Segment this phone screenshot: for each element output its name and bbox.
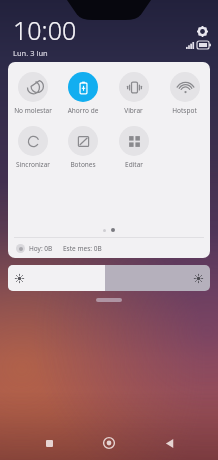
staticText: Lun, 3 Jun bbox=[13, 48, 48, 56]
button[interactable]: Hotspot bbox=[159, 72, 210, 115]
button[interactable]: Home bbox=[94, 428, 124, 458]
button[interactable]: Recents bbox=[34, 428, 64, 458]
button[interactable]: Editar bbox=[108, 126, 159, 169]
staticText: Este mes: 0B bbox=[63, 244, 102, 253]
button[interactable]: Ahorro de batería bbox=[58, 72, 108, 115]
button[interactable]: Back bbox=[154, 428, 184, 458]
staticText: Hoy: 0B bbox=[29, 244, 53, 253]
button[interactable]: Botones bbox=[58, 126, 108, 169]
staticText: Hotspot bbox=[172, 106, 197, 115]
staticText: Sincronizar bbox=[16, 160, 50, 169]
button[interactable]: Sincronizar bbox=[8, 126, 58, 169]
staticText: Ahorro de batería bbox=[58, 106, 108, 115]
button[interactable]: Brightness bbox=[8, 265, 210, 291]
staticText: Vibrar bbox=[124, 106, 143, 115]
staticText: Botones bbox=[70, 160, 96, 169]
staticText: Editar bbox=[125, 160, 143, 169]
button[interactable]: No molestar bbox=[8, 72, 58, 115]
staticText: No molestar bbox=[14, 106, 52, 115]
button[interactable]: Vibrar bbox=[108, 72, 159, 115]
staticText: 10:00 bbox=[13, 13, 77, 47]
button[interactable]: Settings bbox=[193, 22, 211, 40]
